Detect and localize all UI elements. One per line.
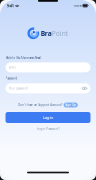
staticText: Login: [42, 115, 53, 120]
button[interactable]: Sign Up: [64, 102, 78, 107]
staticText: Sign Up: [65, 103, 76, 107]
button[interactable]: Login: [5, 112, 90, 123]
staticText: Mobile No/Username/Email: [5, 56, 41, 60]
staticText: Enter: [9, 66, 16, 69]
staticText: Password: [5, 77, 17, 80]
staticText: Forgot Password?: [36, 127, 59, 131]
staticText: 100%: [73, 4, 81, 7]
staticText: Bra: [41, 29, 52, 38]
staticText: 9:41: [7, 3, 14, 8]
staticText: Your password: [9, 87, 28, 90]
staticText: Don't have an Support Account?: [18, 103, 62, 107]
button[interactable]: Forgot Password?: [36, 127, 59, 131]
staticText: Point: [52, 29, 68, 38]
